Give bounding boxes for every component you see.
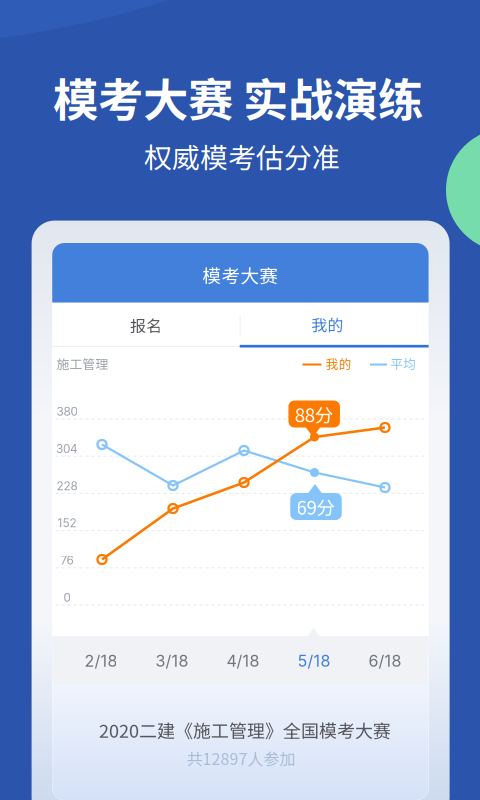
staticText: 报名	[130, 313, 162, 337]
staticText: 152	[57, 516, 76, 530]
staticText: 模考大赛 实战演练	[53, 64, 423, 130]
staticText: 施工管理	[57, 354, 109, 373]
staticText: 76	[60, 553, 73, 567]
staticText: 我的	[311, 313, 343, 336]
button[interactable]: 报名	[52, 303, 240, 347]
staticText: 304	[56, 442, 78, 456]
button[interactable]: 我的	[240, 303, 429, 347]
staticText: 权威模考估分准	[144, 136, 340, 176]
staticText: 3/18	[155, 651, 188, 671]
staticText: 2020二建《施工管理》全国模考大赛	[99, 717, 391, 743]
staticText: 69分	[296, 493, 335, 520]
staticText: 4/18	[226, 651, 259, 671]
staticText: 我的	[326, 354, 352, 373]
staticText: 5/18	[297, 651, 330, 671]
staticText: 0	[63, 590, 70, 605]
staticText: 共12897人参加	[186, 746, 295, 770]
staticText: 平均	[390, 354, 416, 373]
staticText: 228	[56, 479, 77, 493]
staticText: 模考大赛	[203, 261, 279, 288]
staticText: 2/18	[84, 651, 117, 671]
staticText: 88分	[295, 400, 334, 427]
staticText: 380	[56, 404, 77, 419]
staticText: 6/18	[368, 651, 401, 671]
